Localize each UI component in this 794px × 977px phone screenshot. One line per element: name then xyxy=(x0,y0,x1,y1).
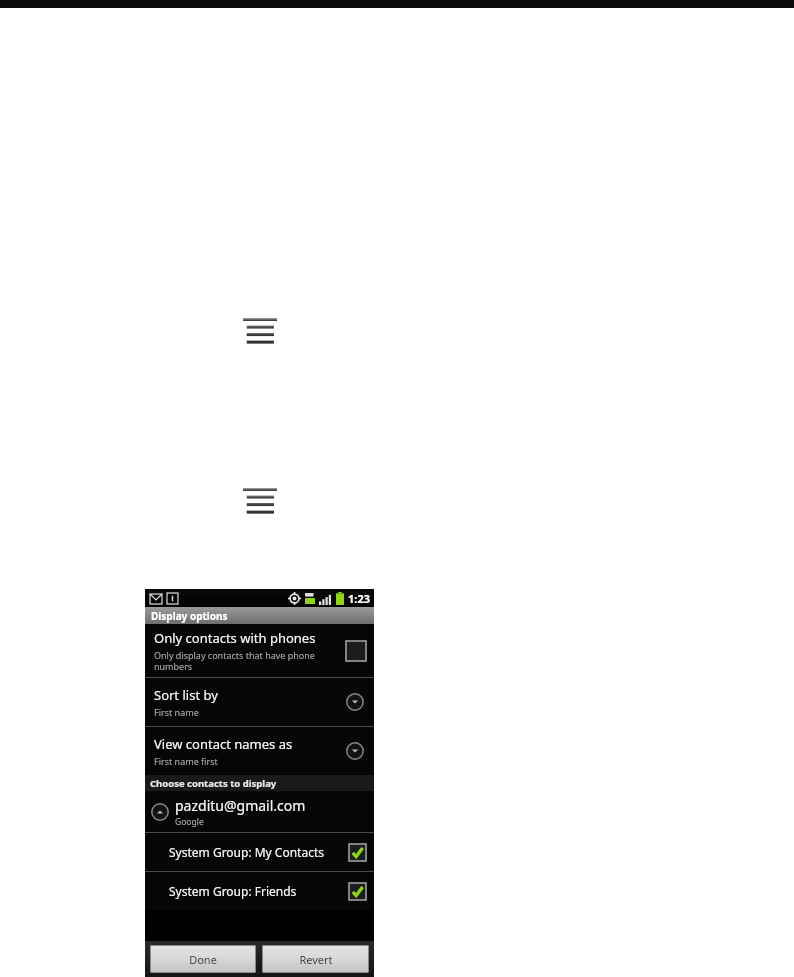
button[interactable]: Unchecked xyxy=(346,641,366,661)
button[interactable]: Expand xyxy=(346,742,364,760)
button[interactable]: Checked xyxy=(349,844,366,861)
staticText: Display options xyxy=(151,609,228,623)
staticText: First name xyxy=(154,706,199,718)
staticText: Google xyxy=(175,816,204,828)
staticText: First name first xyxy=(154,755,218,767)
staticText: Only contacts with phones xyxy=(154,629,316,647)
staticText: Only display contacts that have phone nu… xyxy=(154,649,340,672)
button[interactable]: Collapse xyxy=(151,803,169,821)
button[interactable]: Expand xyxy=(346,693,364,711)
staticText: Choose contacts to display xyxy=(150,777,277,790)
button[interactable]: Done xyxy=(150,945,256,973)
button[interactable]: Collapse xyxy=(145,791,374,832)
staticText: Revert xyxy=(299,952,333,967)
staticText: View contact names as xyxy=(154,735,293,753)
button[interactable]: View contact names as xyxy=(145,727,374,775)
button[interactable]: System Group: Friends xyxy=(145,872,374,910)
staticText: Done xyxy=(189,952,217,967)
staticText: 1:23 xyxy=(348,591,370,606)
staticText: System Group: Friends xyxy=(169,883,349,899)
button[interactable]: Sort list by xyxy=(145,678,374,726)
staticText: System Group: My Contacts xyxy=(169,844,349,860)
button[interactable]: System Group: My Contacts xyxy=(145,833,374,871)
staticText: Sort list by xyxy=(154,686,218,704)
button[interactable]: Only contacts with phones xyxy=(145,624,374,677)
button[interactable]: Checked xyxy=(349,883,366,900)
button[interactable]: Revert xyxy=(262,945,369,973)
staticText: pazditu@gmail.com xyxy=(175,796,306,815)
